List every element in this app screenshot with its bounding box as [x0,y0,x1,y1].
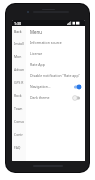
button[interactable]: FAQ [12,141,85,154]
staticText: Contr [14,132,23,137]
staticText: Disable notification "Rate app" [30,73,80,78]
button[interactable]: Conso [12,115,85,128]
button[interactable]: License [26,48,85,59]
staticText: Information source [30,40,62,45]
staticText: Rock [14,93,22,98]
button[interactable]: GPS R [12,76,85,89]
button[interactable]: Town [12,102,85,115]
staticText: Town [14,106,23,111]
staticText: License [30,51,43,56]
button[interactable]: Toggle off [72,95,81,101]
button[interactable]: Dark theme [26,92,85,103]
button[interactable]: Information source [26,37,85,48]
staticText: Conso [14,119,24,124]
button[interactable]: Menu [26,26,85,37]
staticText: Rate App [30,62,45,67]
staticText: Mon [14,54,22,59]
staticText: Dark theme [30,95,50,100]
staticText: FAQ [14,145,21,150]
button[interactable]: Navigation buttons (beta) [26,81,85,92]
staticText: Back [14,29,22,34]
button[interactable]: Mon [12,50,85,63]
staticText: Install [14,41,24,46]
button[interactable]: Rate App [26,59,85,70]
staticText: 1:30 [14,21,22,26]
button[interactable]: Contr [12,128,85,141]
button[interactable]: Rock [12,89,85,102]
button[interactable]: Install [12,37,85,50]
button[interactable]: Toggle on [73,84,82,90]
staticText: Advan [14,67,24,72]
staticText: Menu [30,29,42,35]
button[interactable]: Advan [12,63,85,76]
button[interactable]: Back [12,26,85,37]
button[interactable]: Disable notification "Rate app" [26,70,85,81]
staticText: GPS R [14,80,24,85]
staticText: Navigation buttons (beta) [30,84,51,89]
